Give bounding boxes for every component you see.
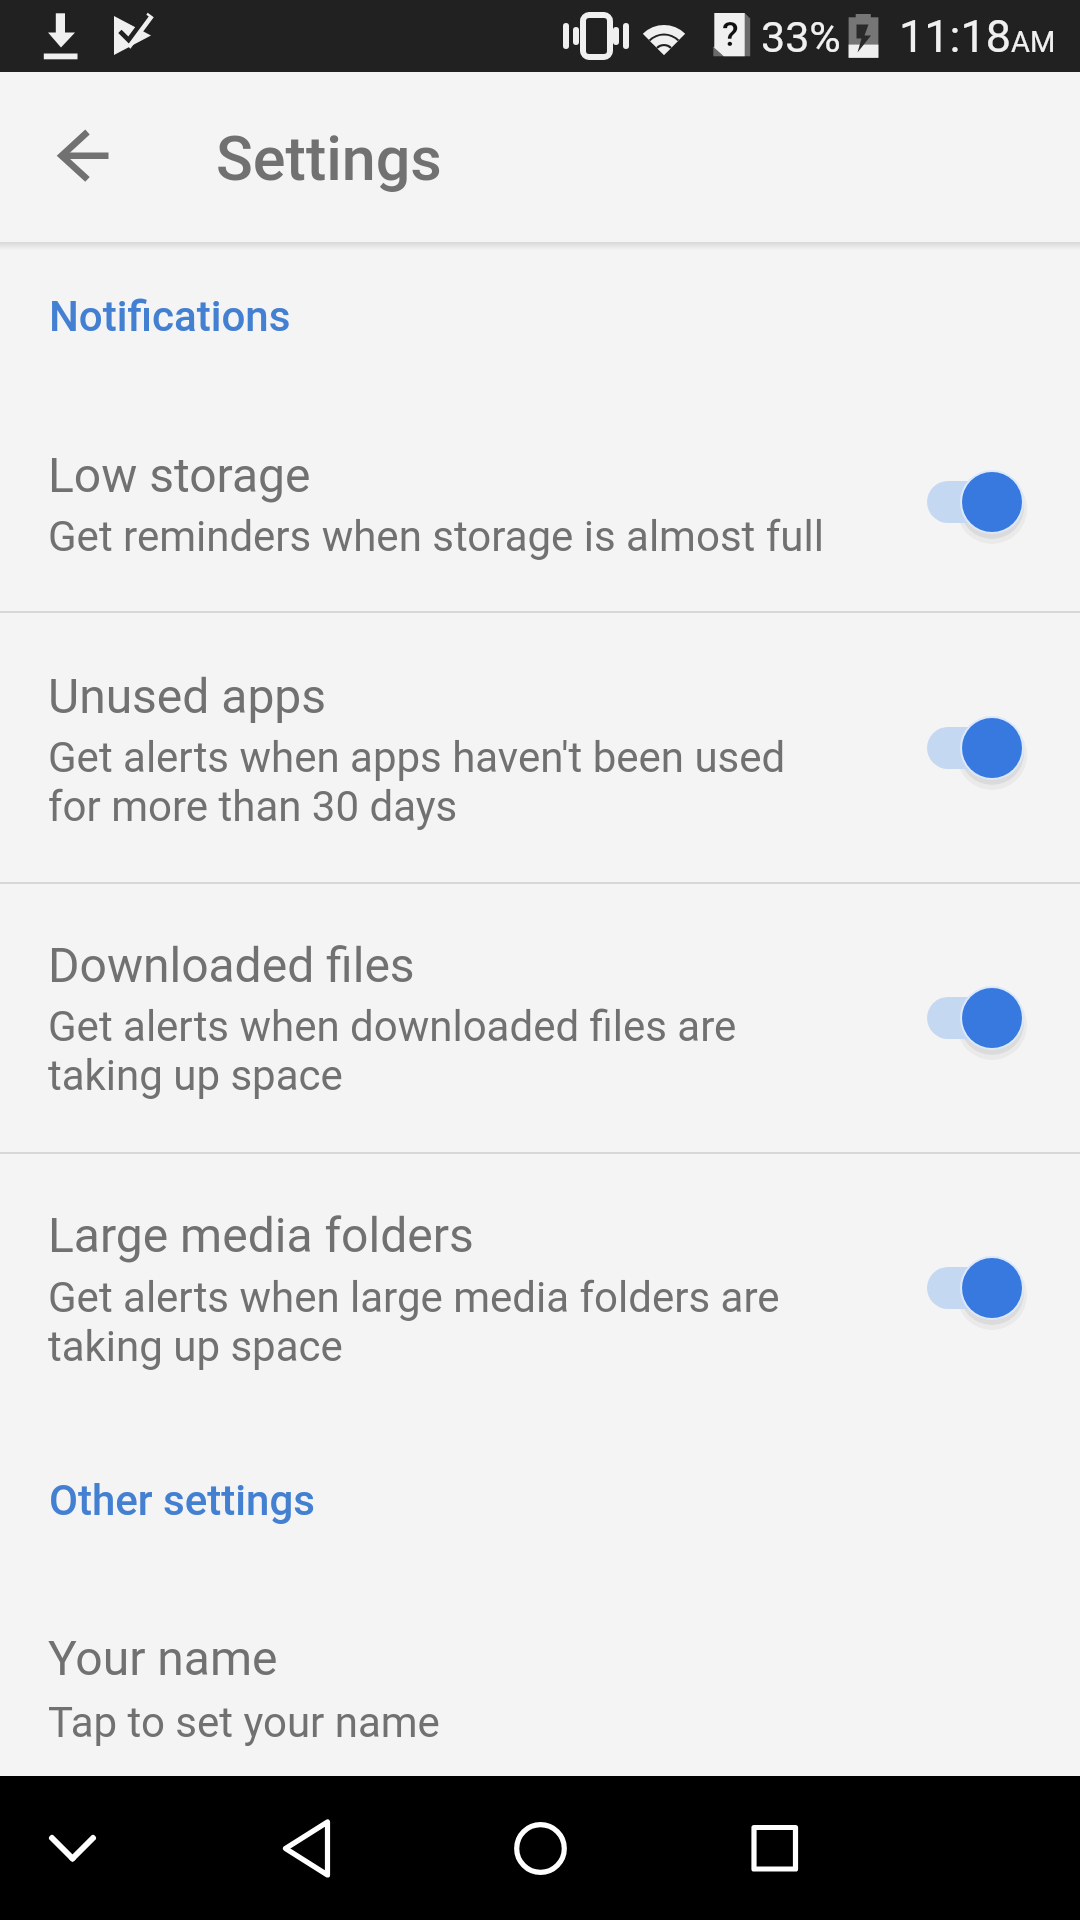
staticText: Notifications bbox=[49, 292, 291, 341]
staticText: Low storage bbox=[48, 447, 311, 503]
staticText: AM bbox=[1011, 25, 1056, 59]
button[interactable]: Large media folders bbox=[0, 1154, 1080, 1420]
button[interactable]: Recent apps bbox=[702, 1776, 842, 1920]
staticText: Large media folders bbox=[48, 1207, 474, 1263]
button[interactable]: Downloaded files bbox=[0, 884, 1080, 1152]
button[interactable]: Low storage bbox=[0, 371, 1080, 611]
staticText: Unused apps bbox=[48, 668, 327, 724]
button[interactable]: Unused apps bbox=[0, 613, 1080, 882]
staticText: ? bbox=[722, 14, 739, 54]
staticText: Tap to set your name bbox=[48, 1698, 440, 1747]
staticText: taking up space bbox=[48, 1322, 343, 1371]
staticText: Get reminders when storage is almost ful… bbox=[48, 512, 824, 561]
staticText: Other settings bbox=[49, 1476, 315, 1525]
button[interactable]: Back bbox=[238, 1776, 378, 1920]
button[interactable]: Back bbox=[14, 114, 98, 198]
staticText: Get alerts when downloaded files are bbox=[48, 1002, 737, 1051]
button[interactable]: Your name bbox=[0, 1560, 1080, 1776]
button[interactable]: Toggle setting bbox=[912, 1240, 1040, 1336]
staticText: 11:18 bbox=[899, 10, 1012, 63]
button[interactable]: Toggle setting bbox=[912, 970, 1040, 1066]
staticText: Settings bbox=[216, 123, 442, 194]
button[interactable]: Toggle setting bbox=[912, 700, 1040, 796]
staticText: Get alerts when large media folders are bbox=[48, 1273, 780, 1322]
staticText: Your name bbox=[48, 1630, 278, 1686]
button[interactable]: Hide keyboard bbox=[4, 1776, 144, 1920]
staticText: 33% bbox=[761, 12, 841, 62]
button[interactable]: Home bbox=[470, 1776, 610, 1920]
staticText: Get alerts when apps haven't been used bbox=[48, 733, 786, 782]
staticText: for more than 30 days bbox=[48, 782, 458, 831]
button[interactable]: Toggle setting bbox=[912, 454, 1040, 550]
staticText: Downloaded files bbox=[48, 937, 415, 993]
staticText: taking up space bbox=[48, 1051, 343, 1100]
